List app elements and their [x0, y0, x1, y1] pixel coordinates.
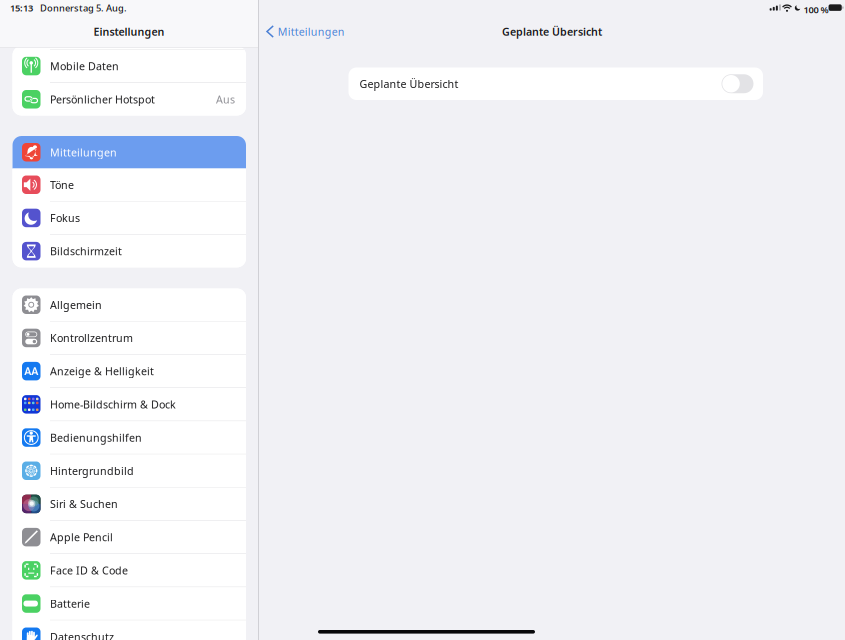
staticText: Mitteilungen — [50, 145, 117, 159]
staticText: AA — [24, 364, 38, 378]
button[interactable]: Persönlicher Hotspot — [12, 83, 246, 115]
staticText: Siri & Suchen — [50, 497, 118, 511]
button[interactable]: Mitteilungen — [12, 136, 246, 168]
button[interactable]: Siri & Suchen — [12, 488, 246, 520]
staticText: Einstellungen — [93, 24, 164, 39]
staticText: Allgemein — [50, 298, 102, 312]
staticText: Datenschutz — [50, 630, 114, 640]
staticText: Home-Bildschirm & Dock — [50, 397, 176, 411]
staticText: Hintergrundbild — [50, 464, 134, 478]
staticText: Bildschirmzeit — [50, 244, 122, 258]
staticText: Apple Pencil — [50, 530, 113, 544]
staticText: 15:13 — [10, 2, 33, 14]
staticText: Face ID & Code — [50, 563, 128, 577]
staticText: Batterie — [50, 596, 90, 611]
button[interactable]: Batterie — [12, 587, 246, 620]
staticText: Fokus — [50, 211, 80, 225]
staticText: Geplante Übersicht — [502, 24, 602, 39]
button[interactable]: Bedienungshilfen — [12, 421, 246, 454]
button[interactable]: Fokus — [12, 202, 246, 234]
staticText: Anzeige & Helligkeit — [50, 364, 154, 378]
staticText: 100 % — [803, 3, 828, 16]
staticText: Bedienungshilfen — [50, 430, 142, 445]
staticText: Persönlicher Hotspot — [50, 92, 155, 106]
button[interactable]: Kontrollzentrum — [12, 322, 246, 354]
staticText: Mobile Daten — [50, 59, 119, 73]
button[interactable]: Bildschirmzeit — [12, 235, 246, 267]
staticText: Geplante Übersicht — [359, 77, 458, 91]
staticText: Töne — [50, 178, 74, 192]
button[interactable]: Face ID & Code — [12, 554, 246, 587]
button[interactable]: Home-Bildschirm & Dock — [12, 388, 246, 421]
staticText: Donnerstag 5. Aug. — [40, 2, 127, 14]
button[interactable]: Mitteilungen — [259, 17, 351, 45]
button[interactable]: Datenschutz — [12, 620, 246, 640]
button[interactable]: Apple Pencil — [12, 521, 246, 553]
button[interactable]: Geplante Übersicht — [348, 67, 763, 100]
staticText: Mitteilungen — [278, 24, 345, 39]
button[interactable]: Allgemein — [12, 288, 246, 321]
button[interactable]: Hintergrundbild — [12, 454, 246, 487]
button[interactable]: Töne — [12, 168, 246, 201]
staticText: Aus — [216, 92, 235, 106]
button[interactable]: Mobile Daten — [12, 50, 246, 82]
button[interactable]: AA — [12, 355, 246, 387]
staticText: Kontrollzentrum — [50, 331, 133, 345]
